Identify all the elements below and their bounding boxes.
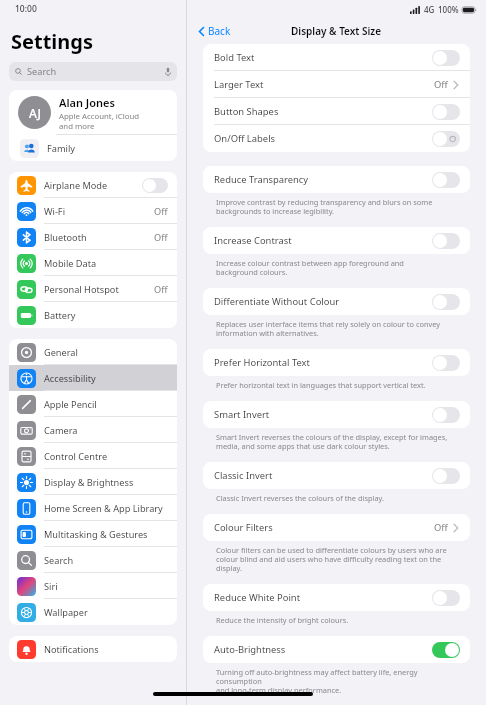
staticText: Off <box>434 521 448 534</box>
button[interactable]: Off <box>432 131 460 147</box>
staticText: Reduce the intensity of bright colours. <box>216 615 349 625</box>
staticText: Alan Jones <box>59 95 115 110</box>
staticText: On/Off Labels <box>214 132 276 145</box>
button[interactable]: Back <box>195 21 234 41</box>
staticText: Bold Text <box>214 51 255 64</box>
staticText: 4G <box>424 4 435 15</box>
staticText: Mobile Data <box>44 257 97 270</box>
button[interactable]: Search <box>9 62 177 81</box>
staticText: Back <box>208 24 231 38</box>
staticText: Search <box>27 65 57 78</box>
button[interactable]: Off <box>432 355 460 371</box>
button[interactable]: Differentiate Without Colour <box>203 288 470 315</box>
button[interactable]: Search <box>9 547 177 573</box>
staticText: Display & Text Size <box>291 24 382 38</box>
button[interactable]: Off <box>432 50 460 66</box>
staticText: Colour Filters <box>214 521 273 534</box>
button[interactable]: Apple Pencil <box>9 391 177 417</box>
button[interactable]: Personal Hotspot <box>9 276 177 302</box>
staticText: 100% <box>438 4 459 15</box>
staticText: Reduce White Point <box>214 591 301 604</box>
button[interactable]: Off <box>432 172 460 188</box>
staticText: Siri <box>44 580 58 593</box>
staticText: Classic Invert reverses the colours of t… <box>216 493 384 503</box>
button[interactable]: AJ <box>9 90 177 135</box>
button[interactable]: Button Shapes <box>203 98 470 125</box>
button[interactable]: Reduce Transparency <box>203 166 470 193</box>
staticText: Display & Brightness <box>44 476 134 489</box>
button[interactable]: Bluetooth <box>9 224 177 250</box>
staticText: Notifications <box>44 643 99 656</box>
staticText: Multitasking & Gestures <box>44 528 148 541</box>
staticText: Auto-Brightness <box>214 643 286 656</box>
button[interactable]: Colour Filters <box>203 514 470 541</box>
staticText: Search <box>44 554 74 567</box>
button[interactable]: Siri <box>9 573 177 599</box>
staticText: Apple Pencil <box>44 398 97 411</box>
button[interactable]: Camera <box>9 417 177 443</box>
staticText: Wallpaper <box>44 606 88 619</box>
button[interactable]: Wallpaper <box>9 599 177 625</box>
button[interactable]: Smart Invert <box>203 401 470 428</box>
button[interactable]: Classic Invert <box>203 462 470 489</box>
staticText: Smart Invert reverses the colours of the… <box>216 432 448 451</box>
staticText: Larger Text <box>214 78 264 91</box>
staticText: Family <box>47 142 75 155</box>
staticText: Prefer Horizontal Text <box>214 356 310 369</box>
button[interactable]: On/Off Labels <box>203 125 470 152</box>
button[interactable]: General <box>9 339 177 365</box>
staticText: AJ <box>29 105 41 121</box>
staticText: General <box>44 346 78 359</box>
staticText: Turning off auto-brightness may affect b… <box>216 667 456 695</box>
staticText: 10:00 <box>15 3 37 15</box>
button[interactable]: Battery <box>9 302 177 328</box>
button[interactable]: Off <box>432 233 460 249</box>
staticText: Off <box>154 205 168 218</box>
button[interactable]: Off <box>432 407 460 423</box>
staticText: Prefer horizontal text in languages that… <box>216 380 426 390</box>
button[interactable]: Reduce White Point <box>203 584 470 611</box>
staticText: Accessibility <box>44 372 96 385</box>
button[interactable]: Off <box>432 294 460 310</box>
staticText: Home Screen & App Library <box>44 502 163 515</box>
button[interactable]: Family <box>9 135 177 161</box>
button[interactable]: Auto-Brightness <box>203 636 470 663</box>
button[interactable]: Wi-Fi <box>9 198 177 224</box>
button[interactable]: Larger Text <box>203 71 470 98</box>
button[interactable]: Home Screen & App Library <box>9 495 177 521</box>
button[interactable]: Off <box>432 590 460 606</box>
staticText: Apple Account, iCloud and more <box>59 111 140 131</box>
staticText: Battery <box>44 309 76 322</box>
button[interactable]: Accessibility <box>9 365 177 391</box>
button[interactable]: Airplane Mode <box>9 172 177 198</box>
button[interactable]: Mobile Data <box>9 250 177 276</box>
staticText: Camera <box>44 424 78 437</box>
staticText: Airplane Mode <box>44 179 108 192</box>
staticText: Improve contrast by reducing transparenc… <box>216 197 433 216</box>
button[interactable]: Control Centre <box>9 443 177 469</box>
button[interactable]: Off <box>142 178 168 193</box>
staticText: Differentiate Without Colour <box>214 295 340 308</box>
staticText: Increase Contrast <box>214 234 292 247</box>
staticText: Button Shapes <box>214 105 279 118</box>
staticText: Replaces user interface items that rely … <box>216 319 441 338</box>
button[interactable]: Off <box>432 104 460 120</box>
button[interactable]: Multitasking & Gestures <box>9 521 177 547</box>
staticText: Control Centre <box>44 450 108 463</box>
button[interactable]: Increase Contrast <box>203 227 470 254</box>
button[interactable]: Prefer Horizontal Text <box>203 349 470 376</box>
staticText: Colour filters can be used to differenti… <box>216 545 456 573</box>
staticText: Increase colour contrast between app for… <box>216 258 404 277</box>
button[interactable]: Display & Brightness <box>9 469 177 495</box>
staticText: Reduce Transparency <box>214 173 309 186</box>
staticText: Off <box>154 283 168 296</box>
button[interactable]: On <box>432 642 460 658</box>
button[interactable]: Bold Text <box>203 44 470 71</box>
staticText: Off <box>434 78 448 91</box>
button[interactable]: Notifications <box>9 636 177 662</box>
staticText: Wi-Fi <box>44 205 66 218</box>
staticText: Smart Invert <box>214 408 270 421</box>
staticText: Bluetooth <box>44 231 87 244</box>
staticText: Personal Hotspot <box>44 283 119 296</box>
button[interactable]: Off <box>432 468 460 484</box>
